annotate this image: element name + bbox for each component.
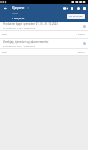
button[interactable]: Varekjøp, tjenester og abonnementer	[0, 39, 88, 48]
button[interactable]: Produkter kjøpt i perioden 01.10 - 31.10…	[0, 22, 88, 30]
staticText: Totalt	[12, 12, 18, 15]
button[interactable]: Video call	[62, 5, 69, 12]
button[interactable]: Sum	[0, 49, 88, 55]
button[interactable]: Menu	[81, 5, 87, 11]
staticText: 30.09.2023 kl. 09:11 · Ordre 8012	[3, 45, 36, 48]
staticText: Sum	[2, 51, 7, 54]
staticText: Kjøpene	[12, 6, 25, 10]
staticText: Sum	[2, 33, 7, 36]
staticText: VIS DETALJER	[69, 15, 83, 18]
staticText: 1 234 kr	[76, 33, 85, 36]
staticText: 31.10.2023 kl. 14:32 · Ordre 8419	[3, 27, 36, 30]
staticText: 1 234,00 kr	[12, 16, 25, 19]
button[interactable]: Back	[1, 4, 9, 12]
button[interactable]: Device	[69, 5, 75, 11]
button[interactable]: VIS DETALJER	[67, 14, 85, 19]
button[interactable]: Sum	[0, 31, 88, 38]
staticText: 987 kr	[78, 51, 85, 54]
staticText: Varekjøp, tjenester og abonnementer	[3, 40, 49, 44]
staticText: Produkter kjøpt i perioden 01.10 - 31.10…	[3, 22, 58, 26]
button[interactable]: Record	[75, 5, 81, 11]
